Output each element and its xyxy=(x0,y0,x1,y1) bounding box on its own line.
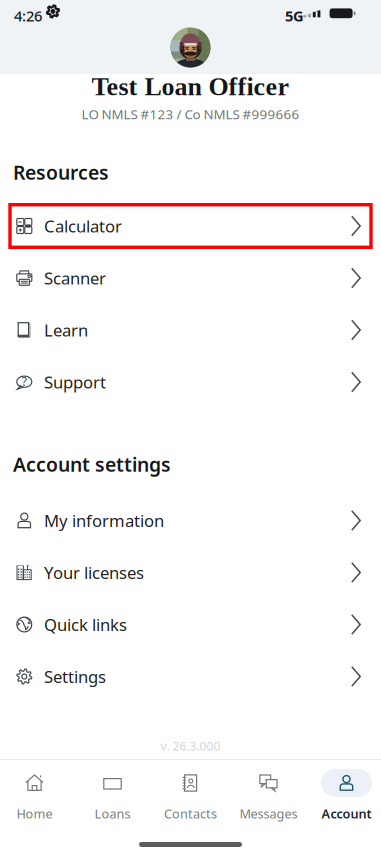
button[interactable]: ? xyxy=(0,356,381,408)
staticText: Scanner xyxy=(44,267,106,289)
staticText: 5G xyxy=(285,6,304,26)
button[interactable]: Loans xyxy=(73,769,151,822)
button[interactable]: Home xyxy=(0,769,73,822)
staticText: Test Loan Officer xyxy=(91,72,289,101)
staticText: Contacts xyxy=(164,805,217,822)
staticText: 4:26 xyxy=(14,6,42,26)
button[interactable]: My information xyxy=(0,494,381,546)
staticText: Learn xyxy=(44,319,88,341)
staticText: Account settings xyxy=(13,451,171,477)
staticText: Home xyxy=(16,805,52,822)
button[interactable]: Learn xyxy=(0,304,381,356)
button[interactable]: Settings xyxy=(0,650,381,702)
staticText: Messages xyxy=(239,805,297,822)
staticText: Calculator xyxy=(44,215,122,237)
staticText: Resources xyxy=(13,159,109,185)
button[interactable]: Account xyxy=(307,769,381,822)
button[interactable]: Your licenses xyxy=(0,546,381,598)
button[interactable]: Messages xyxy=(229,769,307,822)
staticText: My information xyxy=(44,509,164,532)
staticText: Support xyxy=(44,371,106,393)
staticText: LO NMLS #123 / Co NMLS #999666 xyxy=(81,105,299,123)
staticText: Account xyxy=(321,805,371,822)
button[interactable]: Scanner xyxy=(0,252,381,304)
button[interactable]: Calculator xyxy=(0,200,381,252)
staticText: Your licenses xyxy=(44,561,144,584)
staticText: Settings xyxy=(44,665,106,688)
staticText: Quick links xyxy=(44,613,127,636)
button[interactable]: Quick links xyxy=(0,598,381,650)
staticText: v. 26.3.000 xyxy=(160,738,220,754)
button[interactable]: Contacts xyxy=(151,769,229,822)
staticText: ? xyxy=(22,373,27,389)
staticText: Loans xyxy=(94,805,130,822)
